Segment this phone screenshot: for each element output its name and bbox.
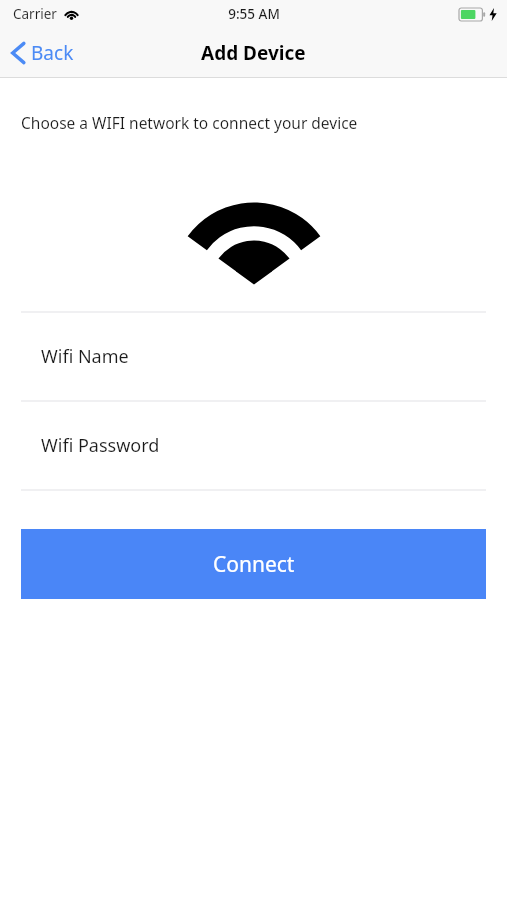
staticText: 9:55 AM [228,5,280,23]
staticText: Back [31,40,74,66]
staticText: Choose a WIFI network to connect your de… [21,112,358,133]
button[interactable]: Back [0,28,86,78]
staticText: Carrier [13,5,57,23]
button[interactable]: Connect [21,529,486,599]
staticText: Wifi Password [41,433,160,458]
button[interactable]: Wifi Name [0,313,507,400]
staticText: Connect [213,550,295,579]
staticText: Add Device [201,40,306,66]
staticText: Wifi Name [41,344,129,369]
button[interactable]: Wifi Password [0,402,507,489]
